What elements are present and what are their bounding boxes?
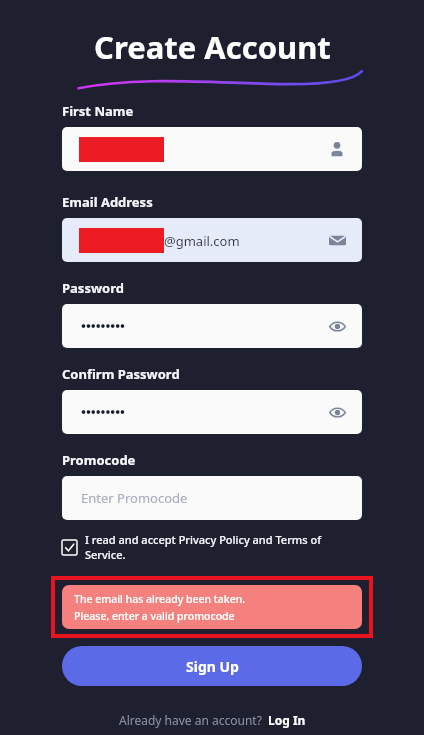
button[interactable]: ••••••••• [62, 390, 362, 434]
button[interactable]: I read and accept Privacy Policy and Ter… [62, 532, 362, 562]
button[interactable]: @gmail.com [62, 218, 362, 262]
staticText: Confirm Password [62, 365, 180, 383]
staticText: Please, enter a valid promocode [74, 609, 235, 623]
staticText: ••••••••• [81, 317, 125, 335]
staticText: Sign Up [186, 657, 239, 676]
staticText: I read and accept Privacy Policy and Ter… [85, 532, 362, 562]
staticText: Email Address [62, 193, 153, 211]
staticText: ••••••••• [81, 403, 125, 421]
button[interactable]: Enter Promocode [62, 476, 362, 520]
button[interactable]: Sign Up [62, 646, 362, 686]
staticText: The email has already been taken. [74, 592, 246, 606]
staticText: Log In [268, 712, 306, 728]
staticText: Create Account [94, 26, 331, 68]
button[interactable]: Show password [326, 315, 348, 337]
staticText: Enter Promocode [81, 489, 188, 507]
staticText: @gmail.com [164, 232, 240, 250]
staticText: Already have an account? [119, 712, 262, 728]
button[interactable]: Name field [62, 127, 362, 171]
button[interactable]: Log In [268, 712, 306, 728]
button[interactable]: Show password [326, 401, 348, 423]
staticText: First Name [62, 102, 134, 120]
staticText: Promocode [62, 451, 136, 469]
staticText: Password [62, 279, 124, 297]
button[interactable]: ••••••••• [62, 304, 362, 348]
other: Name field [326, 138, 348, 160]
other: Email field [326, 229, 348, 251]
button[interactable]: The email has already been taken. [62, 585, 362, 629]
